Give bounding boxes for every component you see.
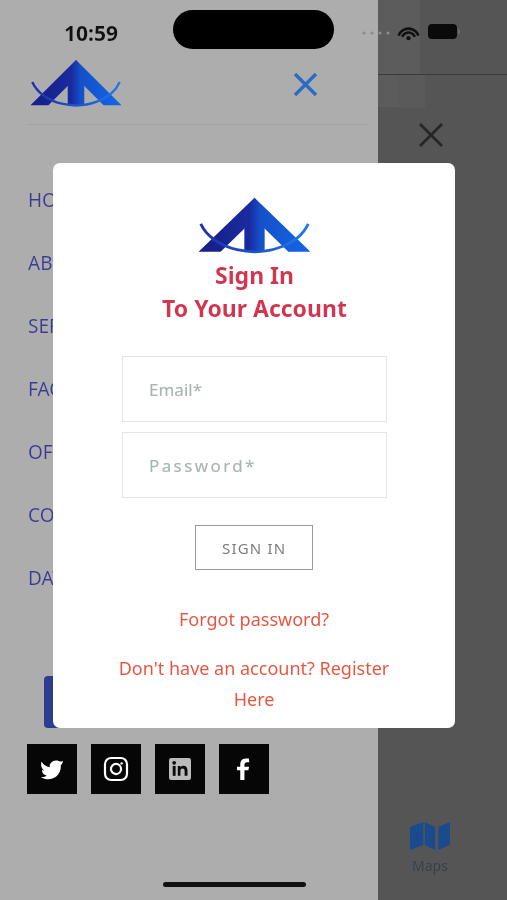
staticText: SERVICES bbox=[28, 313, 112, 339]
staticText: Maps bbox=[412, 856, 448, 875]
staticText: To Your Account bbox=[162, 292, 347, 323]
staticText: Forgot password? bbox=[179, 607, 330, 632]
button[interactable]: SIGN IN bbox=[195, 525, 313, 570]
staticText: 10:59 bbox=[64, 19, 118, 48]
staticText: DATA bbox=[28, 565, 74, 591]
button[interactable]: Close menu bbox=[288, 67, 322, 101]
button[interactable]: LinkedIn bbox=[155, 744, 205, 794]
button[interactable]: Email* bbox=[122, 356, 387, 422]
staticText: Sign In bbox=[215, 259, 294, 290]
button[interactable]: OFFERS bbox=[28, 432, 208, 472]
button[interactable]: Twitter bbox=[27, 744, 77, 794]
button[interactable]: Maps bbox=[406, 818, 454, 879]
staticText: Email* bbox=[149, 378, 203, 401]
button[interactable]: Facebook bbox=[219, 744, 269, 794]
staticText: CONTACT bbox=[28, 502, 113, 528]
button[interactable]: Don't have an account? Register Here bbox=[99, 654, 409, 713]
button[interactable]: DATA bbox=[28, 558, 208, 598]
button[interactable]: SERVICES bbox=[28, 306, 208, 346]
button[interactable]: FAQ bbox=[28, 369, 208, 409]
button[interactable]: CONTACT bbox=[28, 495, 208, 535]
staticText: SIGN IN bbox=[222, 538, 287, 558]
button[interactable]: ABOUT bbox=[28, 243, 208, 283]
staticText: ABOUT bbox=[28, 250, 92, 276]
staticText: OFFERS bbox=[28, 439, 96, 465]
button[interactable]: HOME bbox=[28, 180, 208, 220]
staticText: Password* bbox=[149, 454, 257, 477]
button[interactable]: Instagram bbox=[91, 744, 141, 794]
button[interactable] bbox=[44, 676, 164, 728]
button[interactable]: Forgot password? bbox=[171, 604, 338, 635]
staticText: FAQ bbox=[28, 376, 65, 402]
button[interactable]: Password* bbox=[122, 432, 387, 498]
staticText: HOME bbox=[28, 187, 85, 213]
staticText: Don't have an account? Register Here bbox=[99, 656, 409, 711]
